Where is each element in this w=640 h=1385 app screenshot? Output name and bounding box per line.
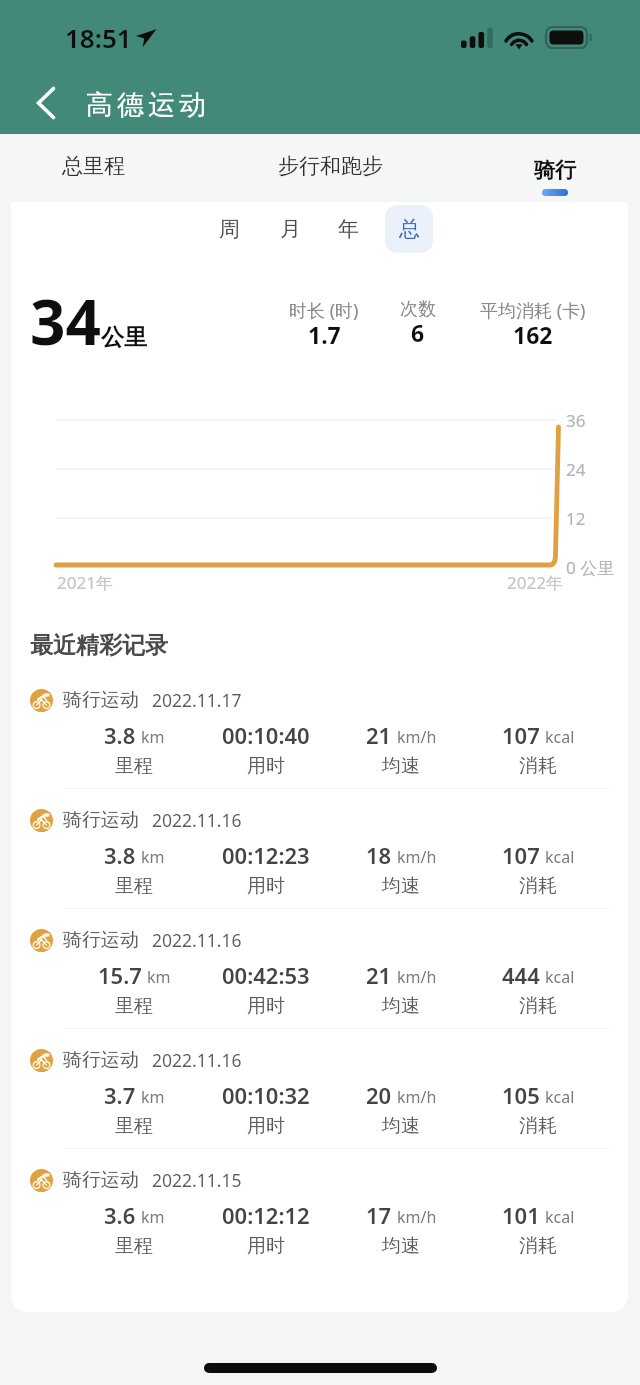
staticText: 用时 <box>247 874 285 898</box>
staticText: km/h <box>397 1086 437 1108</box>
staticText: kcal <box>545 966 575 988</box>
staticText: 骑行运动 <box>63 688 139 712</box>
staticText: 均速 <box>382 994 420 1018</box>
staticText: 消耗 <box>519 1114 557 1138</box>
staticText: 总 <box>399 216 420 242</box>
staticText: 总里程 <box>62 153 125 179</box>
staticText: 里程 <box>115 1234 153 1258</box>
staticText: 均速 <box>382 754 420 778</box>
button[interactable]: Back <box>22 79 70 127</box>
staticText: 用时 <box>247 754 285 778</box>
staticText: 骑行 <box>534 157 576 183</box>
staticText: 3.6 <box>104 1200 136 1230</box>
staticText: km <box>141 846 165 868</box>
staticText: 2022.11.16 <box>152 1048 242 1072</box>
staticText: 平均消耗 (卡) <box>480 298 586 323</box>
staticText: 101 <box>502 1200 540 1230</box>
button[interactable]: 年 <box>324 205 372 253</box>
button[interactable]: 步行和跑步 <box>260 134 400 198</box>
staticText: 00:10:32 <box>222 1080 310 1110</box>
staticText: 00:42:53 <box>222 960 310 990</box>
staticText: kcal <box>545 1206 575 1228</box>
staticText: km <box>147 966 171 988</box>
staticText: 17 <box>366 1200 392 1230</box>
staticText: 162 <box>513 319 553 350</box>
staticText: 444 <box>502 960 540 990</box>
staticText: 骑行运动 <box>63 928 139 952</box>
staticText: 高德运动 <box>84 88 208 122</box>
staticText: 21 <box>366 720 392 750</box>
staticText: 消耗 <box>519 1234 557 1258</box>
staticText: 3.8 <box>104 720 136 750</box>
staticText: 步行和跑步 <box>278 153 383 179</box>
staticText: 用时 <box>247 1114 285 1138</box>
staticText: 里程 <box>115 754 153 778</box>
staticText: 20 <box>366 1080 392 1110</box>
staticText: 公里 <box>101 323 147 352</box>
staticText: 18:51 <box>65 20 132 55</box>
button[interactable]: 骑行运动 <box>11 1024 628 1128</box>
staticText: 107 <box>502 720 540 750</box>
button[interactable]: 平均消耗 (卡) <box>453 298 613 354</box>
button[interactable]: 月 <box>266 205 314 253</box>
staticText: 2021年 <box>57 571 113 594</box>
staticText: 15.7 <box>98 960 142 990</box>
staticText: 2022.11.16 <box>152 928 242 952</box>
staticText: 均速 <box>382 874 420 898</box>
staticText: 3.8 <box>104 840 136 870</box>
button[interactable]: 骑行运动 <box>11 784 628 888</box>
button[interactable]: 骑行运动 <box>11 904 628 1008</box>
staticText: 年 <box>338 216 359 242</box>
staticText: 105 <box>502 1080 540 1110</box>
staticText: 消耗 <box>519 754 557 778</box>
staticText: km/h <box>397 1206 437 1228</box>
staticText: 18 <box>366 840 392 870</box>
staticText: kcal <box>545 726 575 748</box>
staticText: 均速 <box>382 1114 420 1138</box>
staticText: 骑行运动 <box>63 1048 139 1072</box>
staticText: 12 <box>566 507 586 530</box>
staticText: 周 <box>219 216 240 242</box>
staticText: km/h <box>397 846 437 868</box>
staticText: 月 <box>280 216 301 242</box>
staticText: 00:12:23 <box>222 840 310 870</box>
staticText: 6 <box>411 317 425 348</box>
staticText: 里程 <box>115 994 153 1018</box>
staticText: km <box>141 726 165 748</box>
staticText: 用时 <box>247 994 285 1018</box>
staticText: 消耗 <box>519 994 557 1018</box>
staticText: 0 公里 <box>566 556 615 579</box>
staticText: 骑行运动 <box>63 1168 139 1192</box>
staticText: 3.7 <box>104 1080 136 1110</box>
staticText: 21 <box>366 960 392 990</box>
staticText: 2022.11.17 <box>152 688 242 712</box>
staticText: kcal <box>545 1086 575 1108</box>
staticText: kcal <box>545 846 575 868</box>
button[interactable]: 总里程 <box>30 134 156 198</box>
staticText: 次数 <box>400 298 436 321</box>
staticText: km/h <box>397 966 437 988</box>
staticText: 里程 <box>115 874 153 898</box>
staticText: 36 <box>566 409 586 432</box>
staticText: 2022年 <box>507 571 563 594</box>
button[interactable]: 时长 (时) <box>244 298 404 354</box>
staticText: km <box>141 1206 165 1228</box>
staticText: 2022.11.16 <box>152 808 242 832</box>
button[interactable]: 周 <box>205 205 253 253</box>
staticText: 00:10:40 <box>222 720 310 750</box>
button[interactable]: 总 <box>385 205 433 253</box>
staticText: km <box>141 1086 165 1108</box>
button[interactable]: 骑行 <box>500 134 610 198</box>
staticText: 最近精彩记录 <box>30 631 168 660</box>
button[interactable]: 次数 <box>338 298 498 352</box>
button[interactable]: 骑行运动 <box>11 1144 628 1248</box>
staticText: 里程 <box>115 1114 153 1138</box>
button[interactable]: 骑行运动 <box>11 664 628 768</box>
staticText: km/h <box>397 726 437 748</box>
staticText: 2022.11.15 <box>152 1168 242 1192</box>
staticText: 107 <box>502 840 540 870</box>
staticText: 1.7 <box>308 319 341 350</box>
staticText: 00:12:12 <box>222 1200 310 1230</box>
staticText: 骑行运动 <box>63 808 139 832</box>
staticText: 用时 <box>247 1234 285 1258</box>
